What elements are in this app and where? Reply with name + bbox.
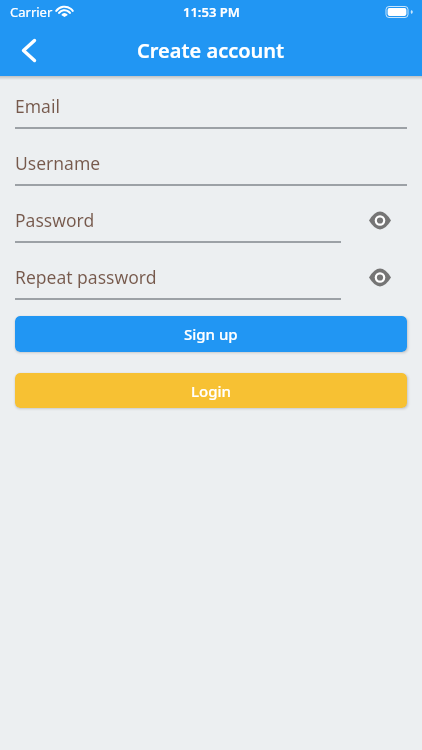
staticText: Username bbox=[15, 151, 101, 175]
staticText: Sign up bbox=[184, 324, 238, 344]
staticText: Email bbox=[15, 94, 60, 118]
button[interactable]: Username bbox=[15, 149, 407, 177]
button[interactable] bbox=[368, 208, 392, 232]
button[interactable]: Email bbox=[15, 92, 407, 120]
staticText: Carrier bbox=[10, 3, 53, 21]
staticText: Repeat password bbox=[15, 265, 157, 289]
button[interactable]: Repeat password bbox=[15, 263, 407, 291]
staticText: Login bbox=[191, 381, 231, 401]
staticText: Create account bbox=[137, 37, 285, 64]
button[interactable]: Sign up bbox=[15, 316, 407, 352]
button[interactable] bbox=[14, 35, 44, 65]
button[interactable]: Password bbox=[15, 206, 407, 234]
button[interactable]: Login bbox=[15, 373, 407, 408]
button[interactable] bbox=[368, 265, 392, 289]
staticText: Password bbox=[15, 208, 95, 232]
staticText: 11:53 PM bbox=[183, 3, 240, 21]
